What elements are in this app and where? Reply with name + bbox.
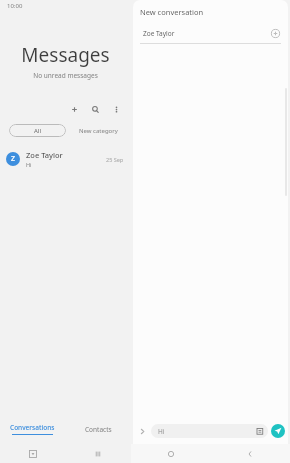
staticText: All — [34, 127, 41, 135]
button[interactable]: Hi — [151, 424, 268, 438]
staticText: Hi — [158, 427, 257, 436]
button[interactable]: Search — [88, 102, 102, 116]
button[interactable]: Expand — [136, 425, 149, 438]
staticText: New conversation — [140, 7, 204, 17]
button[interactable]: Send — [271, 424, 285, 438]
staticText: Zoe Taylor — [143, 29, 269, 38]
staticText: 10:00 — [7, 2, 23, 10]
button[interactable]: Back — [210, 444, 290, 463]
staticText: Conversations — [10, 423, 55, 432]
button[interactable]: Add recipient — [269, 27, 281, 39]
button[interactable]: New category — [77, 125, 120, 137]
button[interactable]: Contacts — [65, 418, 131, 440]
button[interactable]: Home — [131, 444, 210, 463]
staticText: Contacts — [85, 425, 112, 434]
staticText: Z — [11, 154, 16, 164]
staticText: 25 Sep — [106, 156, 124, 163]
button[interactable]: All — [9, 124, 66, 137]
staticText: Zoe Taylor — [26, 150, 63, 160]
button[interactable]: Conversations — [0, 418, 65, 440]
staticText: No unread messages — [0, 71, 131, 80]
button[interactable]: Recents — [65, 444, 131, 463]
staticText: Hi — [26, 161, 32, 168]
staticText: New category — [79, 127, 118, 135]
button[interactable]: More options — [109, 102, 123, 116]
button[interactable]: Z — [0, 147, 131, 171]
button[interactable]: Hide keyboard — [0, 444, 65, 463]
staticText: Messages — [0, 42, 131, 68]
button[interactable]: Add conversation — [67, 102, 81, 116]
